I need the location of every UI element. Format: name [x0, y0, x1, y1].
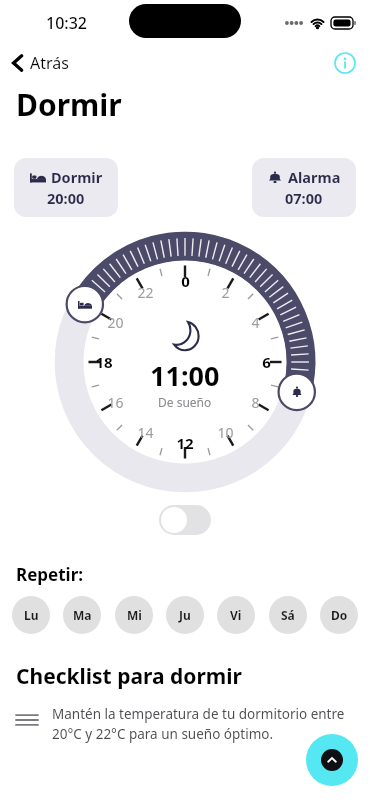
staticText: De sueño	[158, 394, 212, 410]
staticText: Alarma	[288, 167, 341, 187]
staticText: Sá	[281, 607, 295, 623]
staticText: 18	[95, 352, 113, 372]
button[interactable]: Alarma	[252, 158, 356, 217]
button[interactable]: Dormir	[14, 158, 118, 217]
button[interactable]: Sá	[269, 596, 307, 634]
staticText: 10:32	[46, 12, 87, 34]
staticText: Atrás	[30, 52, 69, 74]
staticText: 07:00	[285, 188, 323, 208]
button[interactable]: Mantén la temperatura de tu dormitorio e…	[0, 705, 370, 743]
button[interactable]: Activar alarma	[159, 505, 211, 535]
staticText: 22	[137, 283, 154, 302]
staticText: Dormir	[16, 84, 122, 125]
staticText: Ma	[73, 607, 92, 623]
staticText: 0	[181, 271, 190, 291]
staticText: Lu	[24, 607, 39, 623]
staticText: 20:00	[47, 188, 85, 208]
staticText: Mantén la temperatura de tu dormitorio e…	[52, 705, 356, 743]
button[interactable]: Do	[320, 596, 358, 634]
staticText: 16	[107, 393, 124, 412]
button[interactable]: Ju	[166, 596, 204, 634]
staticText: 11:00	[150, 357, 220, 394]
staticText: 6	[262, 352, 271, 372]
staticText: Repetir:	[16, 563, 84, 586]
button[interactable]: Hora de dormir	[72, 291, 98, 317]
staticText: Checklist para dormir	[16, 662, 242, 691]
staticText: Ju	[179, 607, 191, 623]
staticText: Dormir	[51, 167, 103, 187]
button[interactable]: Subir	[306, 734, 358, 786]
staticText: 8	[251, 393, 260, 412]
button[interactable]: Hora de alarma	[284, 379, 310, 405]
button[interactable]: Vi	[217, 596, 255, 634]
button[interactable]: Mi	[115, 596, 153, 634]
staticText: 12	[176, 433, 194, 453]
staticText: Do	[331, 607, 348, 623]
button[interactable]: Lu	[12, 596, 50, 634]
button[interactable]: Información	[334, 52, 356, 74]
staticText: 4	[251, 313, 260, 332]
button[interactable]: Atrás	[8, 49, 73, 77]
staticText: 10	[217, 423, 234, 442]
button[interactable]: Ma	[63, 596, 101, 634]
staticText: 14	[137, 423, 154, 442]
staticText: Vi	[230, 607, 242, 623]
staticText: 2	[221, 283, 230, 302]
staticText: Mi	[127, 607, 142, 623]
staticText: 20	[107, 313, 124, 332]
